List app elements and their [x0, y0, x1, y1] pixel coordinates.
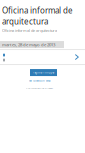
staticText: Ver la versión web	[29, 79, 51, 83]
staticText: Oficina informal de arquitectura	[2, 5, 73, 27]
button[interactable]: Entrada del blog	[3, 54, 5, 57]
staticText: Página Principal	[32, 71, 54, 74]
staticText: Oficina informal de arquitectura	[2, 28, 57, 33]
staticText: martes, 28 de mayo de 2013	[2, 42, 55, 47]
button[interactable]: Ver la versión web	[0, 79, 85, 83]
button[interactable]: Página Principal	[30, 69, 57, 76]
staticText: Con tecnología de Blogger.	[26, 86, 54, 90]
button[interactable]: Entradas antiguas	[75, 54, 85, 61]
